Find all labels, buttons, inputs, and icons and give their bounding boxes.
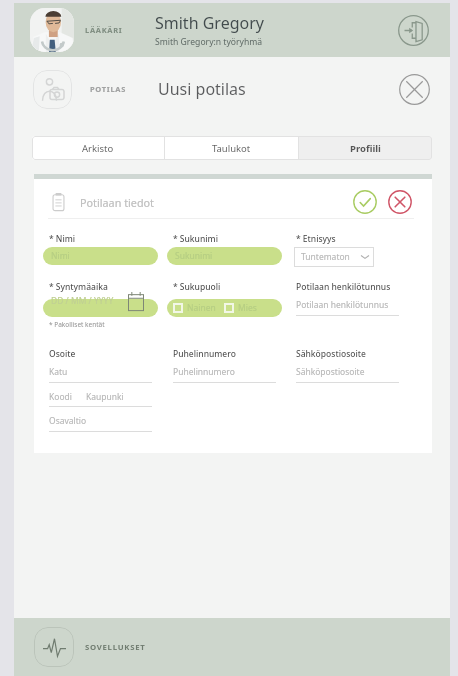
staticText: * Nimi — [49, 233, 76, 245]
staticText: Potilaan henkilötunnus — [296, 299, 389, 311]
staticText: Puhelinnumero — [173, 348, 236, 360]
button[interactable]: Profiili — [299, 136, 432, 160]
staticText: POTILAS — [90, 84, 127, 94]
button[interactable]: Koodi — [49, 391, 152, 403]
staticText: Osoite — [49, 348, 76, 360]
button[interactable]: Tuntematon — [294, 247, 374, 267]
staticText: LÄÄKÄRI — [85, 25, 123, 35]
button[interactable]: Potilaan henkilötunnus — [296, 299, 399, 316]
staticText: Puhelinnumero — [173, 366, 235, 378]
staticText: Tuntematon — [301, 251, 350, 263]
staticText: Sähköpostiosoite — [296, 348, 366, 360]
staticText: * Sukupuoli — [173, 281, 221, 293]
staticText: Taulukot — [212, 142, 251, 155]
button[interactable]: Puhelinnumero — [173, 366, 276, 383]
staticText: Nimi — [51, 250, 70, 262]
staticText: Sähköpostiosoite — [296, 366, 365, 378]
button[interactable]: Sovellukset — [34, 627, 74, 667]
staticText: Sukunimi — [175, 250, 213, 262]
staticText: SOVELLUKSET — [85, 642, 146, 653]
button[interactable]: Tallenna — [352, 189, 378, 215]
staticText: DD / MM / YYYY — [51, 295, 114, 307]
staticText: Potilaan tiedot — [80, 195, 154, 210]
button[interactable]: Katu — [49, 366, 152, 383]
staticText: * Etnisyys — [296, 233, 336, 245]
staticText: Mies — [238, 302, 257, 314]
button[interactable]: Kirjaudu ulos — [392, 9, 434, 51]
staticText: Potilaan henkilötunnus — [296, 281, 391, 293]
button[interactable]: Sukunimi — [167, 247, 282, 265]
staticText: Smith Gregory:n työryhmä — [155, 36, 263, 48]
button[interactable]: Mies — [224, 302, 257, 314]
staticText: Arkisto — [82, 142, 114, 155]
staticText: * Syntymäaika — [49, 281, 108, 293]
staticText: Profiili — [350, 142, 381, 155]
button[interactable]: Peruuta — [387, 189, 413, 215]
staticText: Kaupunki — [86, 391, 124, 403]
staticText: * Sukunimi — [173, 233, 218, 245]
button[interactable]: Sulje — [394, 69, 434, 109]
staticText: Osavaltio — [49, 415, 87, 427]
button[interactable] — [43, 299, 158, 317]
button[interactable]: Sähköpostiosoite — [296, 366, 399, 383]
button[interactable]: Arkisto — [32, 136, 164, 160]
staticText: Koodi — [49, 391, 72, 403]
button[interactable]: Osavaltio — [49, 415, 152, 432]
staticText: Katu — [49, 366, 68, 378]
staticText: Uusi potilas — [158, 78, 246, 100]
button[interactable]: Nimi — [43, 247, 158, 265]
button[interactable]: Nainen — [173, 302, 216, 314]
staticText: Smith Gregory — [155, 12, 264, 34]
button[interactable]: Taulukot — [165, 136, 298, 160]
staticText: * Pakolliset kentät — [49, 320, 105, 329]
staticText: Nainen — [187, 302, 216, 314]
